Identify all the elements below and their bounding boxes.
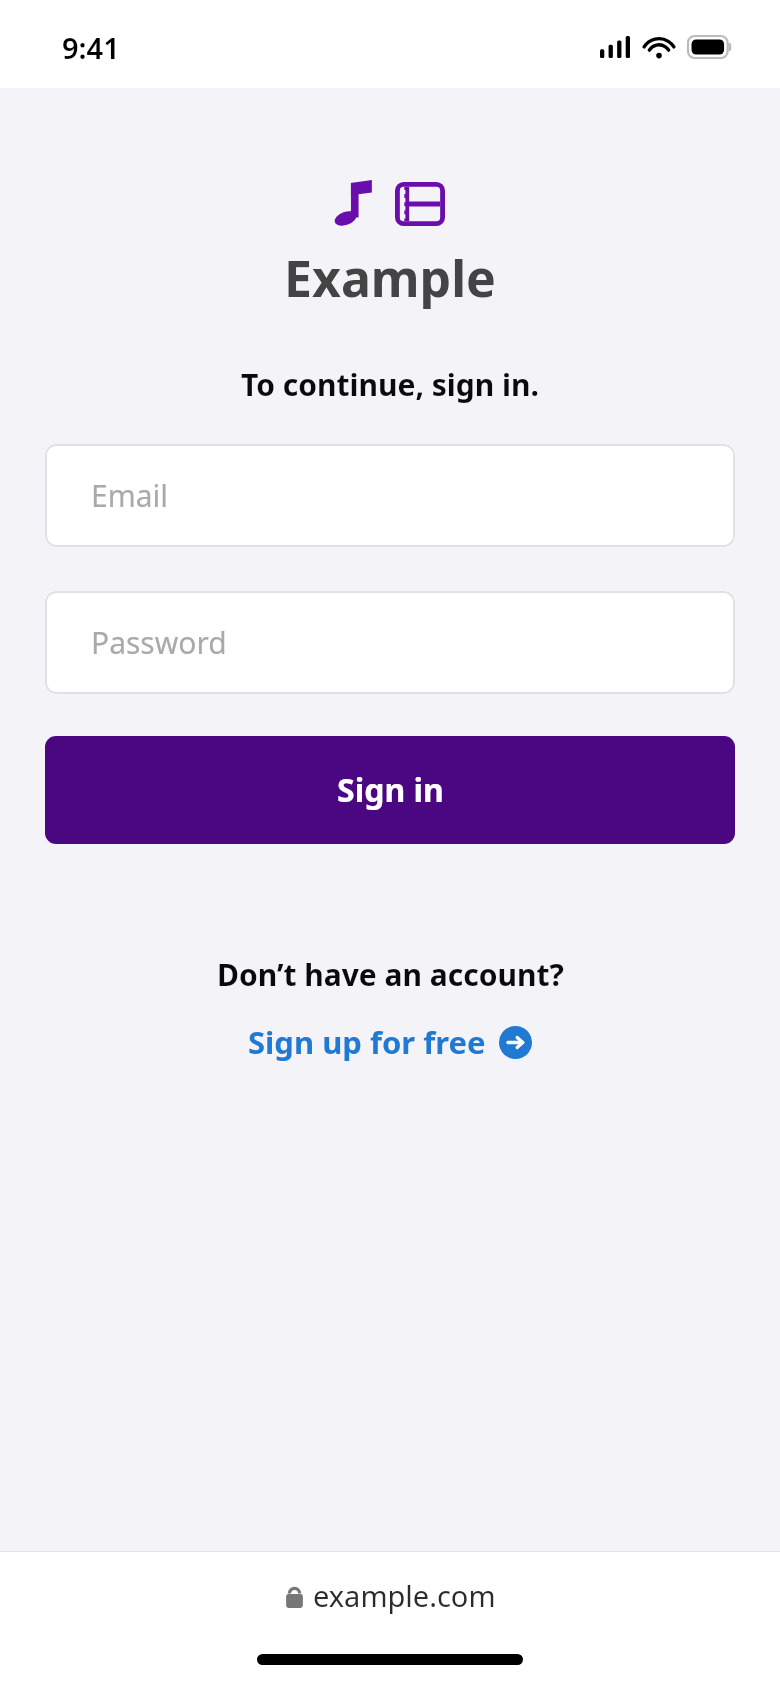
- staticText: 9:41: [62, 28, 120, 67]
- staticText: Sign up for free: [248, 1021, 486, 1063]
- staticText: Don’t have an account?: [217, 954, 564, 995]
- staticText: To continue, sign in.: [241, 364, 539, 405]
- button[interactable]: Email: [45, 444, 735, 547]
- staticText: example.com: [313, 1576, 496, 1615]
- button[interactable]: Sign in: [45, 736, 735, 844]
- button[interactable]: Password: [45, 591, 735, 694]
- staticText: Example: [284, 244, 496, 312]
- staticText: Password: [91, 622, 227, 663]
- button[interactable]: Sign up for free: [240, 1017, 540, 1067]
- staticText: Email: [91, 475, 169, 516]
- other: Sign up for free: [499, 1026, 532, 1059]
- staticText: Sign in: [337, 768, 444, 812]
- button[interactable]: example.com: [273, 1570, 508, 1621]
